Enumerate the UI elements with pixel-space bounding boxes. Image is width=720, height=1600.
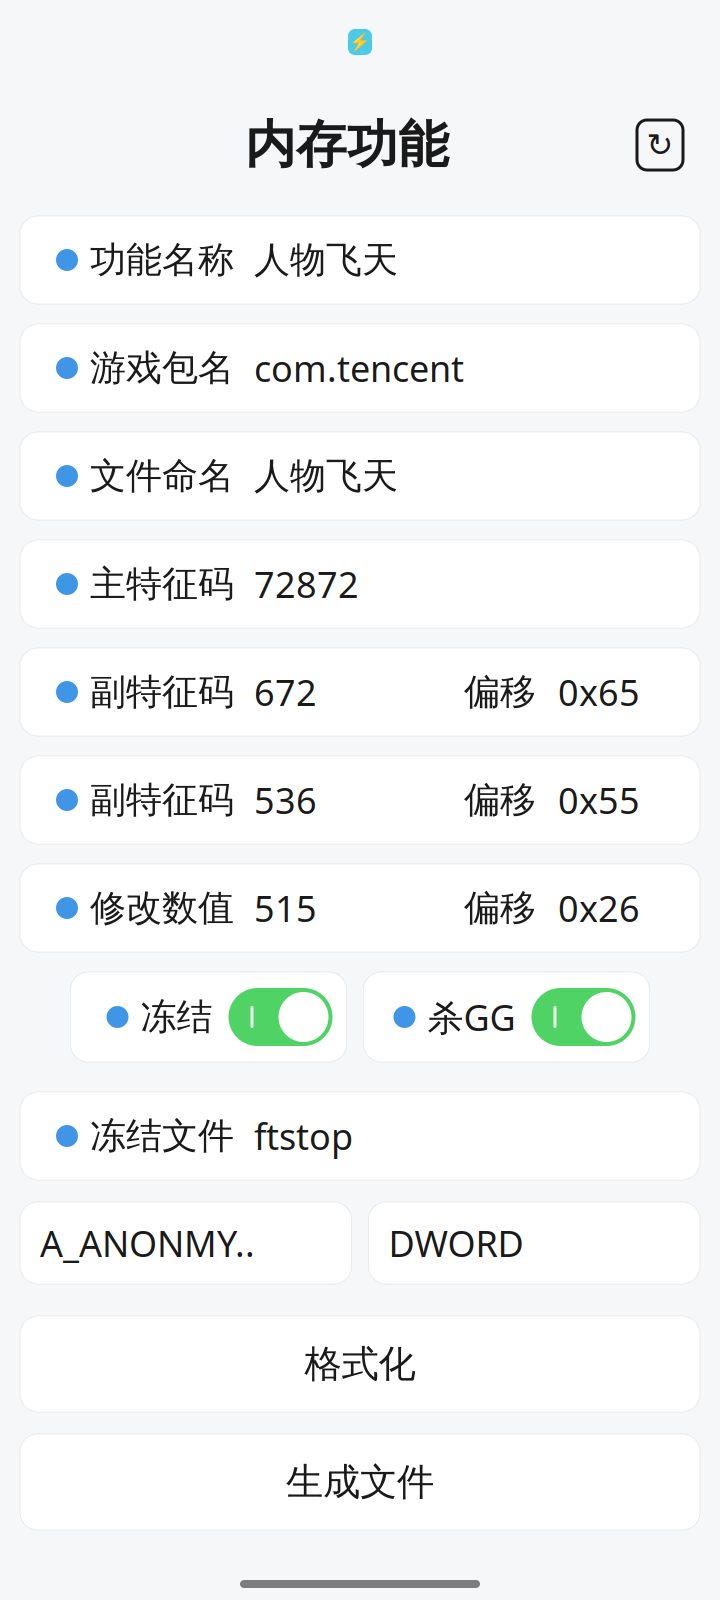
staticText: 主特征码: [90, 562, 234, 606]
staticText: 冻结: [140, 995, 212, 1039]
button[interactable]: 功能名称: [20, 216, 700, 304]
staticText: 0x55: [558, 776, 640, 824]
button[interactable]: 主特征码: [20, 540, 700, 628]
staticText: 72872: [254, 560, 359, 608]
button[interactable]: 游戏包名: [20, 324, 700, 412]
staticText: 515: [254, 884, 317, 932]
staticText: 副特征码: [90, 778, 234, 822]
button[interactable]: 冻结: [70, 972, 346, 1062]
staticText: 人物飞天: [254, 238, 398, 282]
button[interactable]: 格式化: [20, 1316, 700, 1412]
button[interactable]: 副特征码: [20, 648, 700, 736]
button[interactable]: 生成文件: [20, 1434, 700, 1530]
staticText: 偏移: [464, 778, 536, 822]
button[interactable]: 副特征码: [20, 756, 700, 844]
button[interactable]: 刷新: [634, 118, 686, 172]
staticText: 修改数值: [90, 886, 234, 930]
staticText: 生成文件: [286, 1459, 434, 1505]
staticText: 杀GG: [427, 993, 515, 1041]
button[interactable]: A_ANONMY..: [20, 1202, 351, 1284]
staticText: 功能名称: [90, 238, 234, 282]
button[interactable]: 冻结文件: [20, 1092, 700, 1180]
staticText: 副特征码: [90, 670, 234, 714]
staticText: ⚡: [349, 32, 371, 52]
button[interactable]: 修改数值: [20, 864, 700, 952]
staticText: 0x65: [558, 668, 640, 716]
staticText: com.tencent: [254, 344, 464, 392]
staticText: 536: [254, 776, 317, 824]
staticText: 672: [254, 668, 317, 716]
staticText: 冻结文件: [90, 1114, 234, 1158]
staticText: ↻: [646, 127, 673, 163]
button[interactable]: 杀GG: [363, 972, 649, 1062]
staticText: 人物飞天: [254, 454, 398, 498]
staticText: ftstop: [254, 1112, 353, 1160]
staticText: DWORD: [388, 1219, 523, 1267]
staticText: 0x26: [558, 884, 640, 932]
button[interactable]: DWORD: [368, 1202, 700, 1284]
staticText: 偏移: [464, 670, 536, 714]
staticText: 格式化: [304, 1341, 415, 1387]
staticText: 偏移: [464, 886, 536, 930]
staticText: 游戏包名: [90, 346, 234, 390]
staticText: 内存功能: [245, 114, 449, 176]
staticText: 文件命名: [90, 454, 234, 498]
staticText: A_ANONMY..: [40, 1219, 255, 1267]
button[interactable]: 文件命名: [20, 432, 700, 520]
